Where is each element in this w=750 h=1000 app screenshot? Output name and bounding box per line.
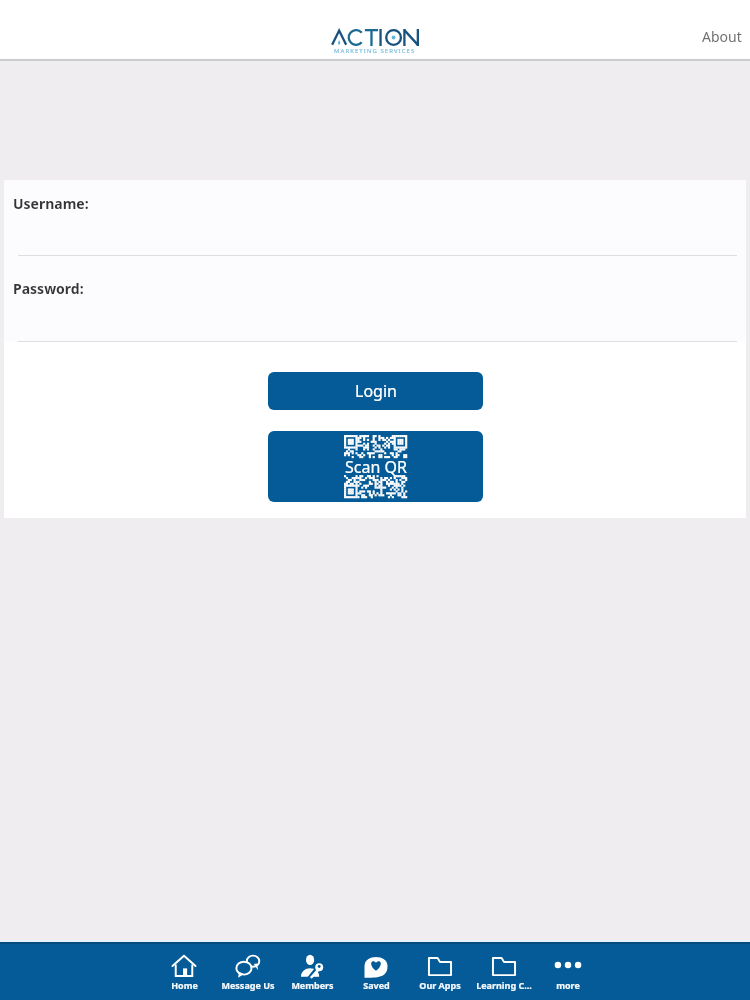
staticText: Learning C... bbox=[476, 979, 532, 991]
other: Home bbox=[172, 954, 196, 978]
button[interactable]: Username: bbox=[4, 180, 746, 255]
staticText: Our Apps bbox=[419, 979, 461, 991]
button[interactable]: More bbox=[536, 944, 600, 1000]
button[interactable]: Scan QR bbox=[268, 431, 483, 502]
button[interactable]: Members bbox=[280, 944, 344, 1000]
button[interactable]: Saved bbox=[344, 944, 408, 1000]
other: Saved bbox=[364, 954, 388, 978]
button[interactable]: Password: bbox=[4, 256, 746, 341]
staticText: About bbox=[702, 27, 742, 46]
staticText: more bbox=[556, 979, 580, 991]
staticText: Username: bbox=[13, 194, 89, 213]
button[interactable]: About bbox=[696, 21, 748, 52]
other: Our Apps bbox=[428, 954, 452, 978]
button[interactable]: Home bbox=[152, 944, 216, 1000]
staticText: Scan QR bbox=[345, 456, 407, 478]
other: Learning Center bbox=[492, 954, 516, 978]
staticText: Login bbox=[355, 380, 397, 402]
staticText: Saved bbox=[363, 979, 390, 991]
button[interactable]: Learning Center bbox=[472, 944, 536, 1000]
button[interactable]: Login bbox=[268, 372, 483, 410]
other: More bbox=[556, 954, 580, 978]
staticText: MARKETING SERVICES bbox=[334, 47, 416, 55]
staticText: Home bbox=[171, 979, 198, 991]
button[interactable]: Message Us bbox=[216, 944, 280, 1000]
staticText: Message Us bbox=[221, 979, 275, 991]
other: Message Us bbox=[236, 954, 260, 978]
staticText: Members bbox=[291, 979, 334, 991]
staticText: Password: bbox=[13, 279, 84, 298]
button[interactable]: Our Apps bbox=[408, 944, 472, 1000]
other: Members bbox=[300, 954, 324, 978]
